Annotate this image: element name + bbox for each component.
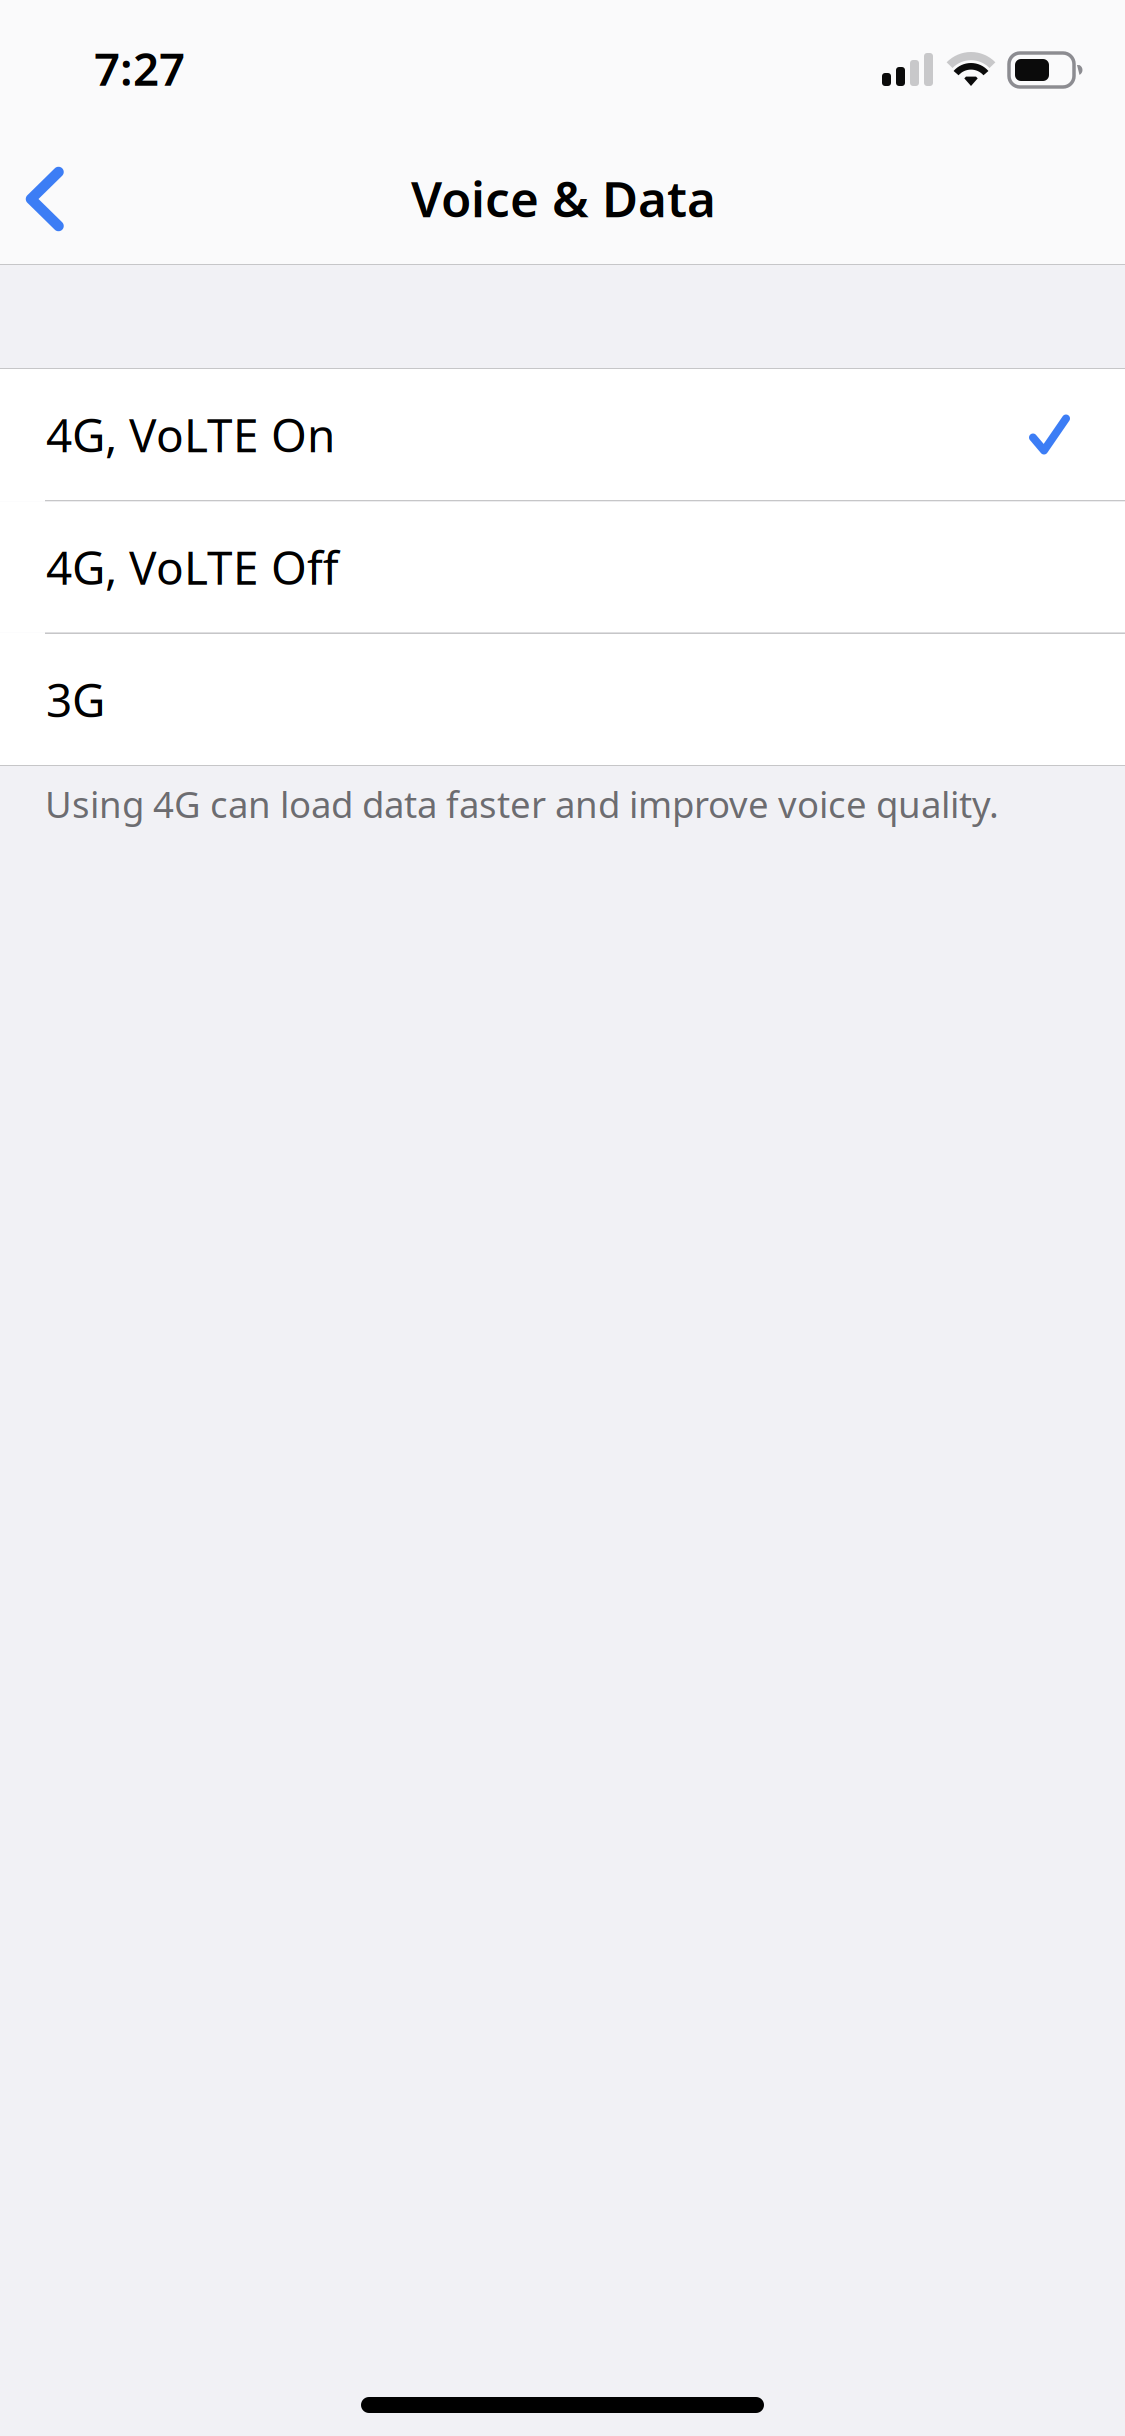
button[interactable]: Back [0,146,87,250]
button[interactable]: 4G, VoLTE Off [0,501,1125,632]
staticText: 3G [46,668,105,731]
button[interactable]: 3G [0,634,1125,765]
staticText: 4G, VoLTE Off [46,536,339,598]
staticText: 4G, VoLTE On [46,403,335,466]
staticText: Voice & Data [411,164,716,232]
button[interactable]: 4G, VoLTE On [0,369,1125,500]
staticText: Using 4G can load data faster and improv… [45,779,999,829]
staticText: 7:27 [94,37,185,99]
